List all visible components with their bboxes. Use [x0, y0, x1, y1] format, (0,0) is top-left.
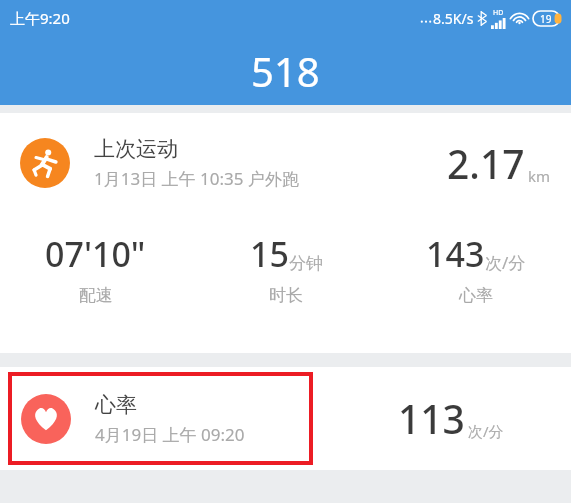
- other: Signal: [491, 18, 506, 29]
- staticText: 1月13日 上午 10:35 户外跑: [94, 167, 299, 190]
- staticText: 15: [250, 231, 289, 277]
- button[interactable]: 143: [381, 231, 571, 306]
- staticText: 113: [398, 392, 465, 445]
- button[interactable]: 15: [191, 231, 381, 306]
- staticText: 19: [540, 12, 552, 26]
- other: Battery 19 percent: [533, 11, 563, 26]
- other: Running: [29, 147, 61, 179]
- button[interactable]: Heart rate: [0, 367, 571, 470]
- staticText: 8.5K/s: [433, 9, 474, 28]
- staticText: 次/分: [468, 421, 504, 441]
- other: Wi-Fi: [511, 12, 528, 25]
- other: Heart rate: [33, 406, 59, 432]
- staticText: 518: [251, 44, 320, 98]
- staticText: km: [528, 166, 551, 186]
- staticText: 2.17: [447, 137, 525, 190]
- staticText: 上午9:20: [10, 8, 70, 28]
- staticText: 4月19日 上午 09:20: [95, 423, 245, 446]
- button[interactable]: 07'10": [0, 231, 191, 306]
- staticText: 心率: [95, 392, 137, 418]
- staticText: 时长: [269, 285, 303, 306]
- button[interactable]: Running: [0, 113, 571, 213]
- staticText: 143: [426, 231, 485, 277]
- staticText: 上次运动: [94, 136, 178, 162]
- staticText: HD: [493, 8, 504, 18]
- other: Bluetooth: [477, 11, 487, 26]
- staticText: 07'10": [45, 231, 146, 277]
- staticText: 次/分: [485, 251, 526, 274]
- staticText: 分钟: [289, 253, 323, 274]
- staticText: 配速: [79, 285, 113, 306]
- staticText: 心率: [459, 285, 493, 306]
- button[interactable]: 518: [0, 36, 571, 105]
